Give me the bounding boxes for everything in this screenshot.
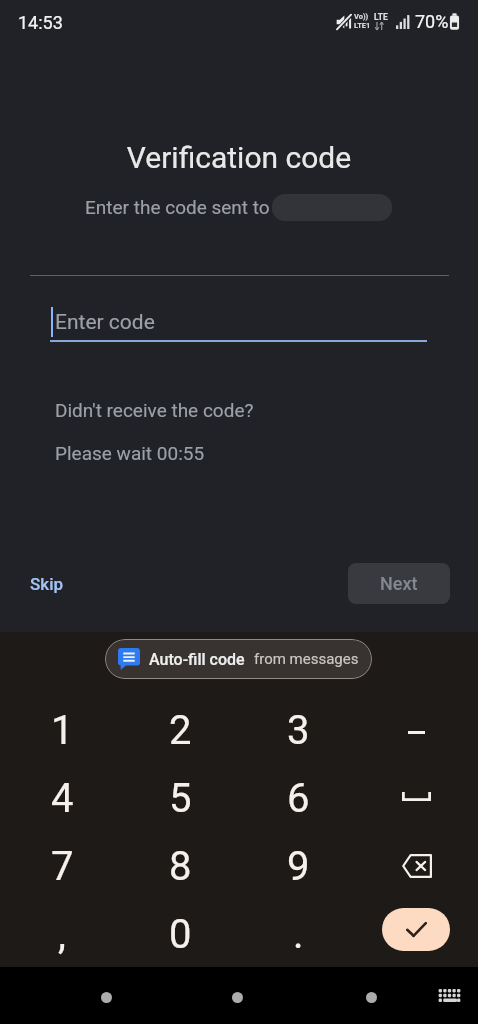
staticText: Please wait 00:55	[55, 442, 205, 464]
button[interactable]: Skip	[14, 563, 80, 605]
button[interactable]: .	[239, 900, 357, 968]
button[interactable]: Hide keyboard	[432, 983, 466, 1007]
staticText: Skip	[30, 574, 64, 594]
staticText: LTE1	[354, 21, 371, 30]
button[interactable]: 6	[239, 764, 357, 832]
button[interactable]: 4	[3, 764, 121, 832]
button[interactable]: Space	[357, 764, 475, 832]
button[interactable]: 5	[121, 764, 239, 832]
staticText: 3	[287, 707, 310, 754]
button[interactable]: 1	[3, 696, 121, 764]
staticText: ,	[58, 911, 66, 958]
button[interactable]: Recents	[101, 992, 112, 1003]
button[interactable]: 2	[121, 696, 239, 764]
staticText: 14:53	[18, 12, 63, 33]
staticText: 6	[287, 775, 310, 822]
staticText: 1	[51, 707, 74, 754]
button[interactable]: Enter	[382, 908, 450, 951]
button[interactable]: 3	[239, 696, 357, 764]
staticText: 0	[169, 911, 192, 958]
staticText: LTE	[374, 12, 388, 22]
staticText: 7	[51, 843, 74, 890]
staticText: 9	[287, 843, 310, 890]
staticText: .	[293, 911, 304, 958]
staticText: Enter the code sent to	[85, 196, 270, 218]
staticText: Vo))	[354, 12, 369, 21]
button[interactable]: Dash	[357, 696, 475, 764]
staticText: Verification code	[0, 140, 478, 175]
button[interactable]: Backspace	[357, 832, 475, 900]
button[interactable]: 0	[121, 900, 239, 968]
button[interactable]: Back	[366, 992, 377, 1003]
button[interactable]: Auto-fill code	[105, 639, 372, 679]
staticText: Auto-fill code	[149, 650, 245, 669]
staticText: Enter code	[55, 310, 155, 335]
staticText: Didn't receive the code?	[55, 399, 254, 421]
other: Sound muted	[336, 14, 352, 30]
staticText: 4	[51, 775, 74, 822]
button[interactable]: 7	[3, 832, 121, 900]
staticText: Next	[380, 573, 418, 594]
staticText: 8	[169, 843, 192, 890]
staticText: 70%	[415, 11, 449, 32]
staticText: from messages	[254, 650, 359, 668]
button[interactable]: Home	[232, 992, 243, 1003]
button[interactable]: Next	[348, 563, 450, 604]
staticText: 5	[169, 775, 192, 822]
staticText: 2	[169, 707, 192, 754]
button[interactable]: 9	[239, 832, 357, 900]
button[interactable]: ,	[3, 900, 121, 968]
button[interactable]: 8	[121, 832, 239, 900]
